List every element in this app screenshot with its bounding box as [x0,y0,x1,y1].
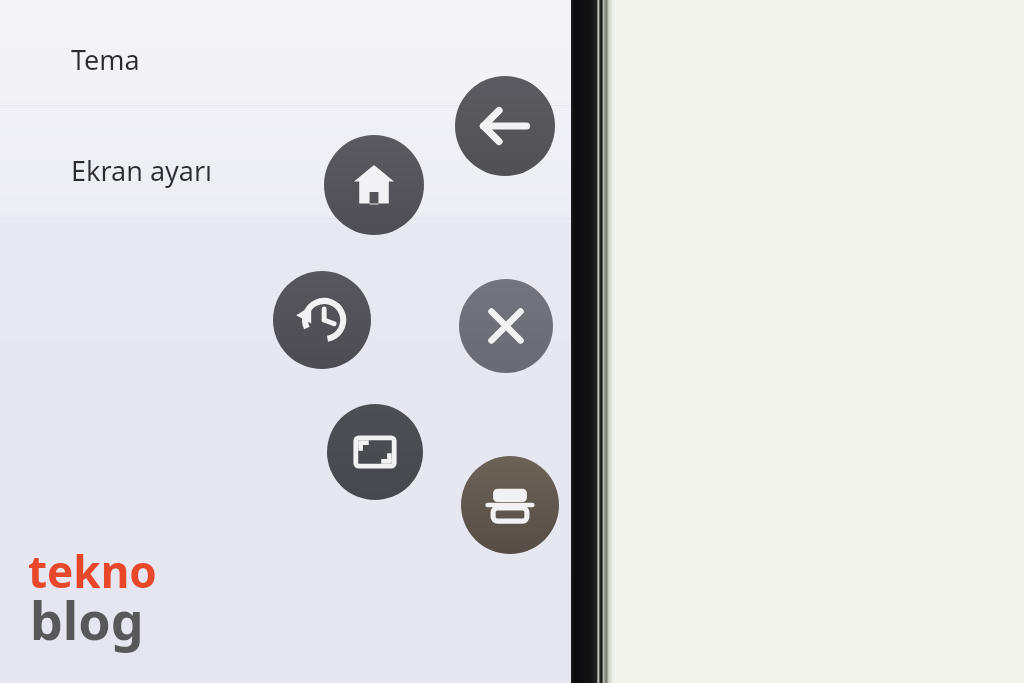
button[interactable]: Resize window [327,404,423,500]
button[interactable]: Ekran ayarı [71,152,213,189]
button[interactable]: Close [459,279,553,373]
staticText: tekno [28,541,157,601]
staticText: blog [30,584,144,655]
button[interactable]: Home [324,135,424,235]
button[interactable]: Split screen [461,456,559,554]
button[interactable]: Tema [71,41,140,78]
button[interactable]: Recent history [273,271,371,369]
button[interactable]: Back [455,76,555,176]
